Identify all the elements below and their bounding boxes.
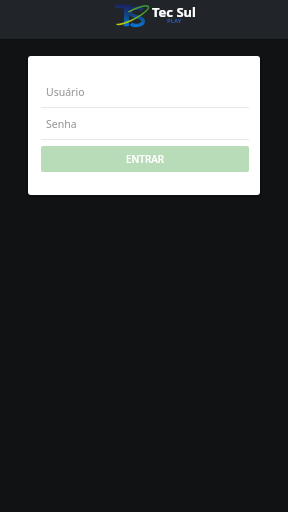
button[interactable]: Tec Sul Play [114,3,196,29]
staticText: Senha [46,117,77,129]
staticText: PLAY [167,17,182,25]
button[interactable]: ENTRAR [41,146,249,172]
staticText: Tec Sul [152,3,196,21]
button[interactable]: Usuário [41,85,249,97]
staticText: ENTRAR [126,152,165,166]
staticText: Usuário [46,85,85,97]
button[interactable]: Senha [41,117,249,129]
